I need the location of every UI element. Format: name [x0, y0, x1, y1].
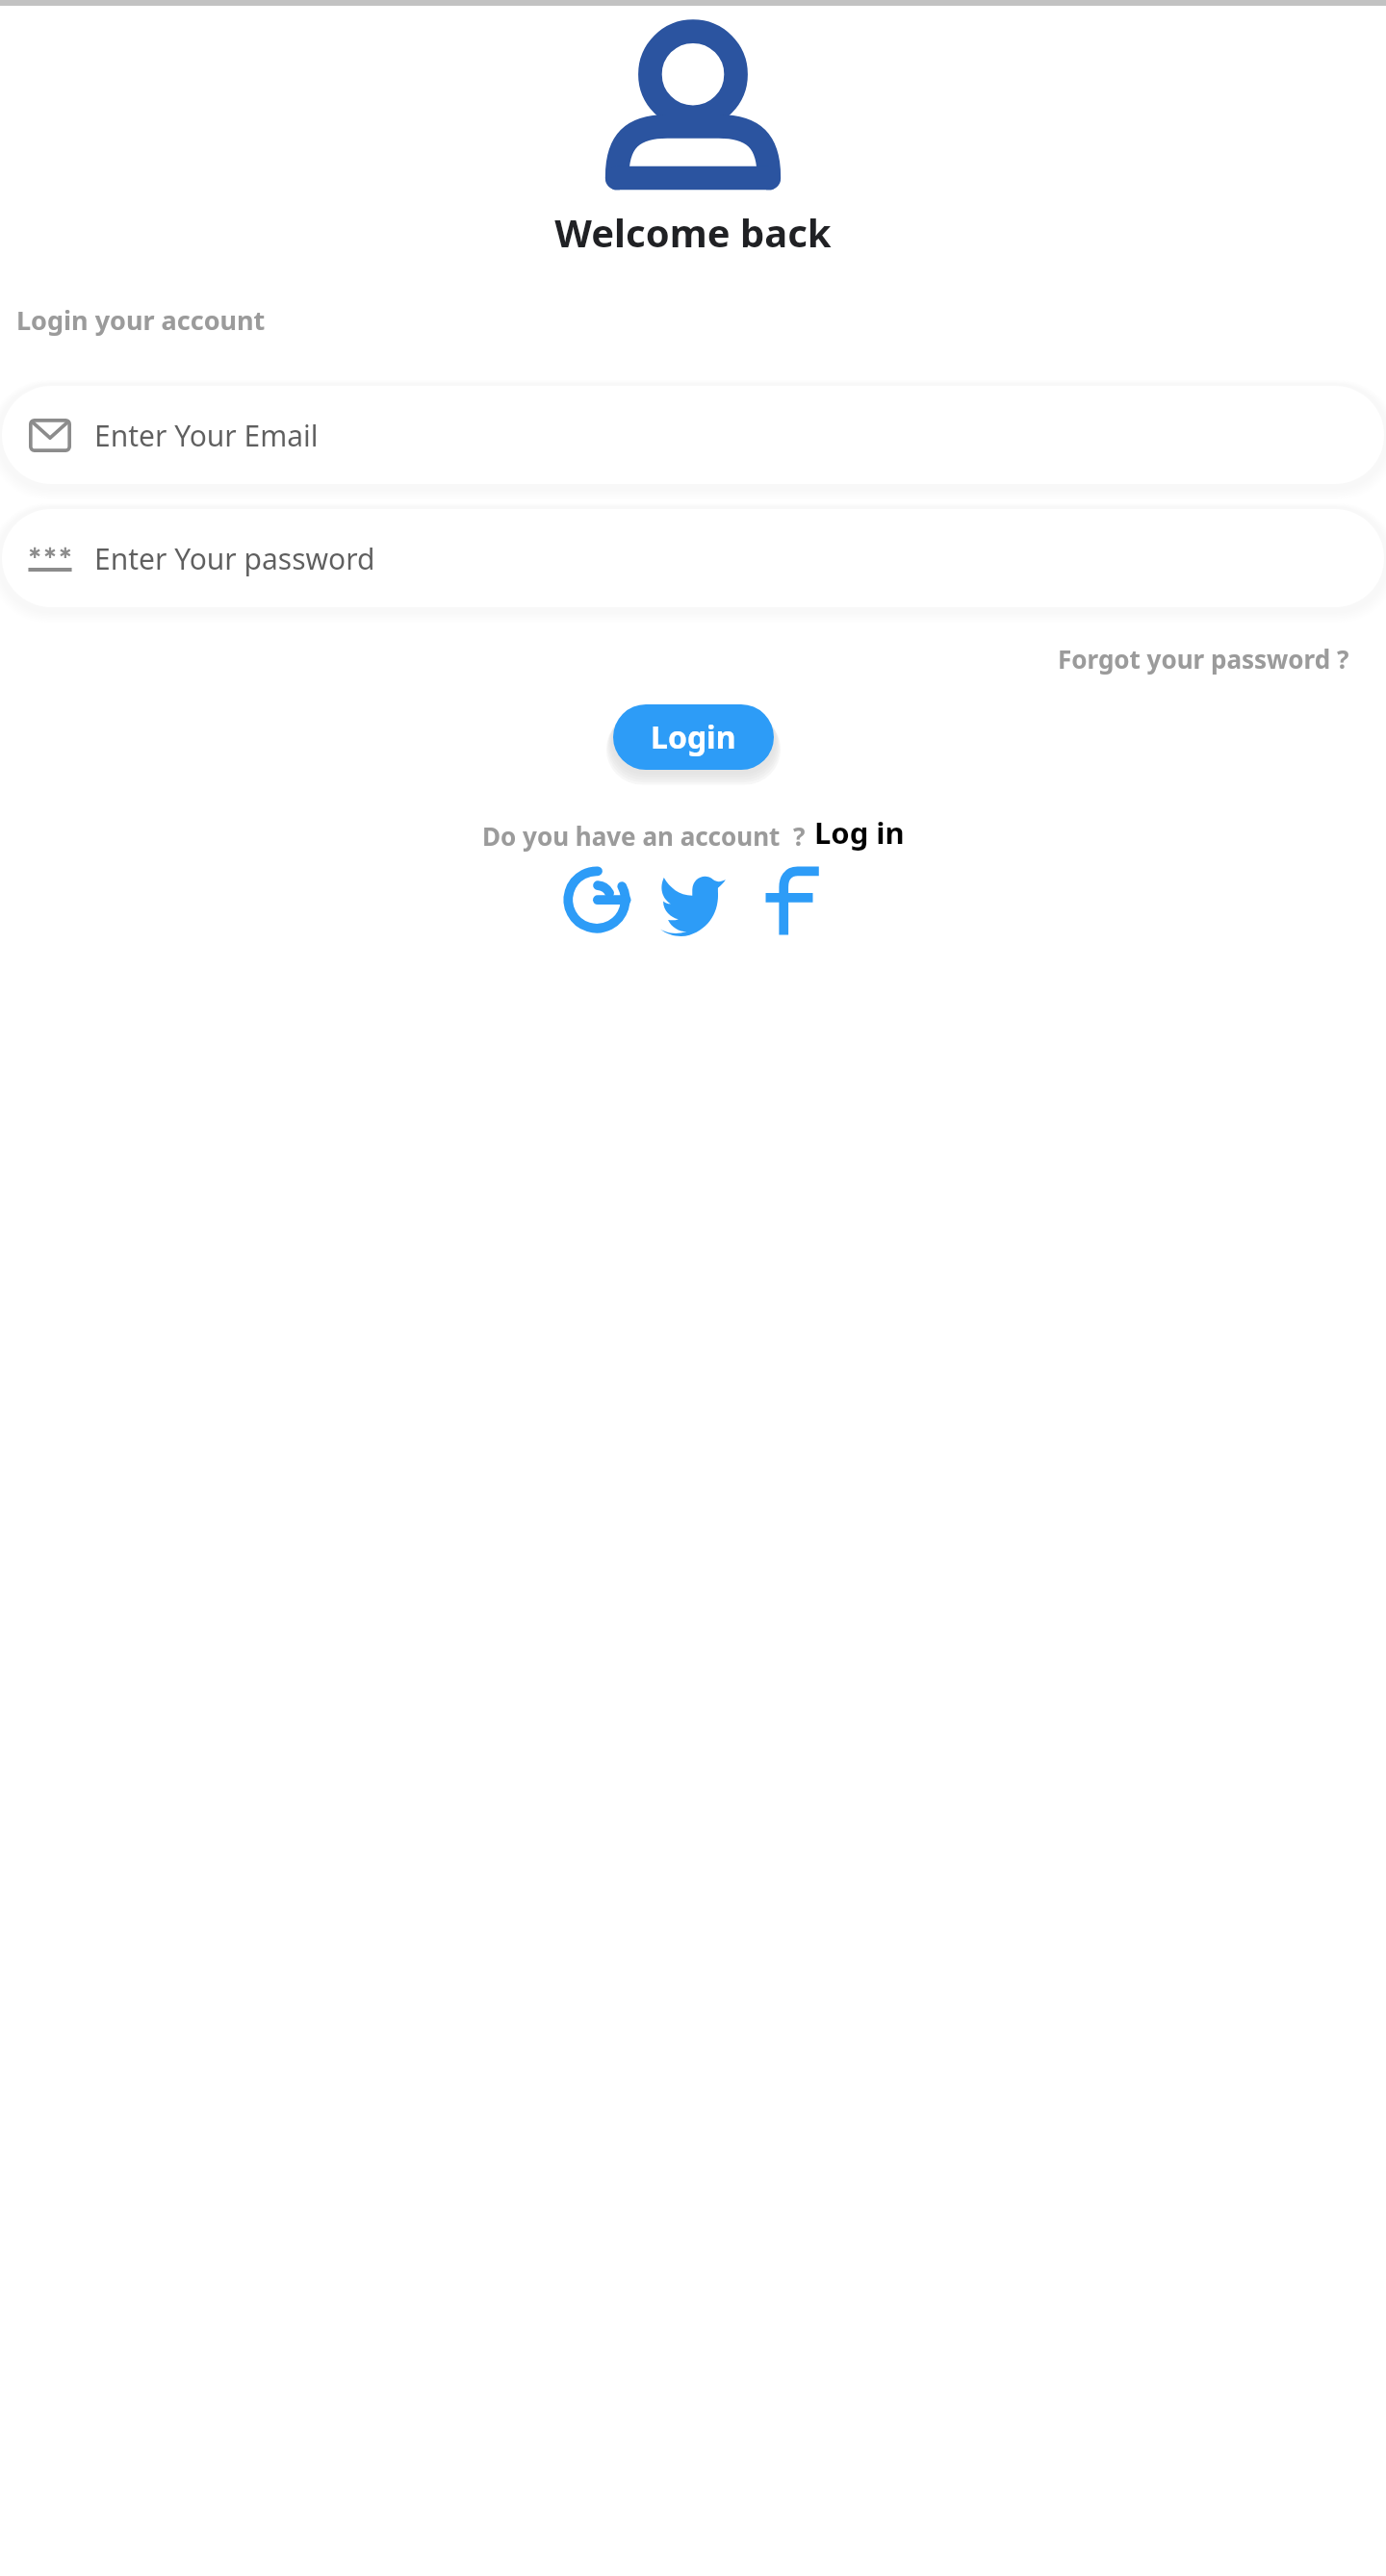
staticText: Enter Your password: [94, 539, 375, 578]
button[interactable]: Sign in with Google: [555, 858, 638, 941]
staticText: Do you have an account ?: [482, 819, 806, 853]
button[interactable]: Forgot your password ?: [1021, 634, 1386, 683]
staticText: Login your account: [16, 302, 1386, 338]
button[interactable]: Log in: [814, 812, 905, 853]
staticText: Welcome back: [0, 206, 1386, 258]
staticText: Login: [651, 716, 736, 758]
staticText: Forgot your password ?: [1058, 642, 1349, 676]
button[interactable]: Enter Your password: [2, 509, 1384, 607]
button[interactable]: Login: [613, 704, 774, 770]
staticText: Enter Your Email: [94, 416, 319, 455]
staticText: Log in: [814, 812, 905, 853]
button[interactable]: Sign in with Facebook: [748, 858, 831, 941]
button[interactable]: Enter Your Email: [2, 386, 1384, 484]
button[interactable]: Sign in with Twitter: [652, 858, 734, 941]
